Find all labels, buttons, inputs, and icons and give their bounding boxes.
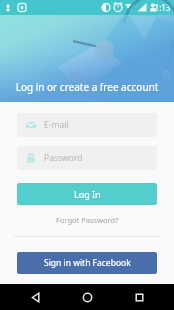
staticText: 11:13 (150, 2, 171, 13)
button[interactable]: Back (18, 284, 52, 310)
button[interactable]: Forgot Password? (50, 213, 125, 227)
staticText: E-mail (44, 119, 69, 131)
button[interactable]: Recent apps (122, 284, 156, 310)
button[interactable]: Log In (17, 183, 157, 205)
staticText: Password (44, 152, 83, 164)
button[interactable]: Home (70, 284, 104, 310)
button[interactable]: Password (17, 146, 157, 170)
button[interactable]: Sign in with Facebook (17, 252, 157, 274)
button[interactable]: E-mail (17, 113, 157, 137)
staticText: Sign in with Facebook (44, 257, 131, 269)
staticText: Log In (74, 188, 101, 200)
staticText: Log in or create a free account (0, 80, 174, 94)
staticText: Forgot Password? (56, 215, 119, 225)
